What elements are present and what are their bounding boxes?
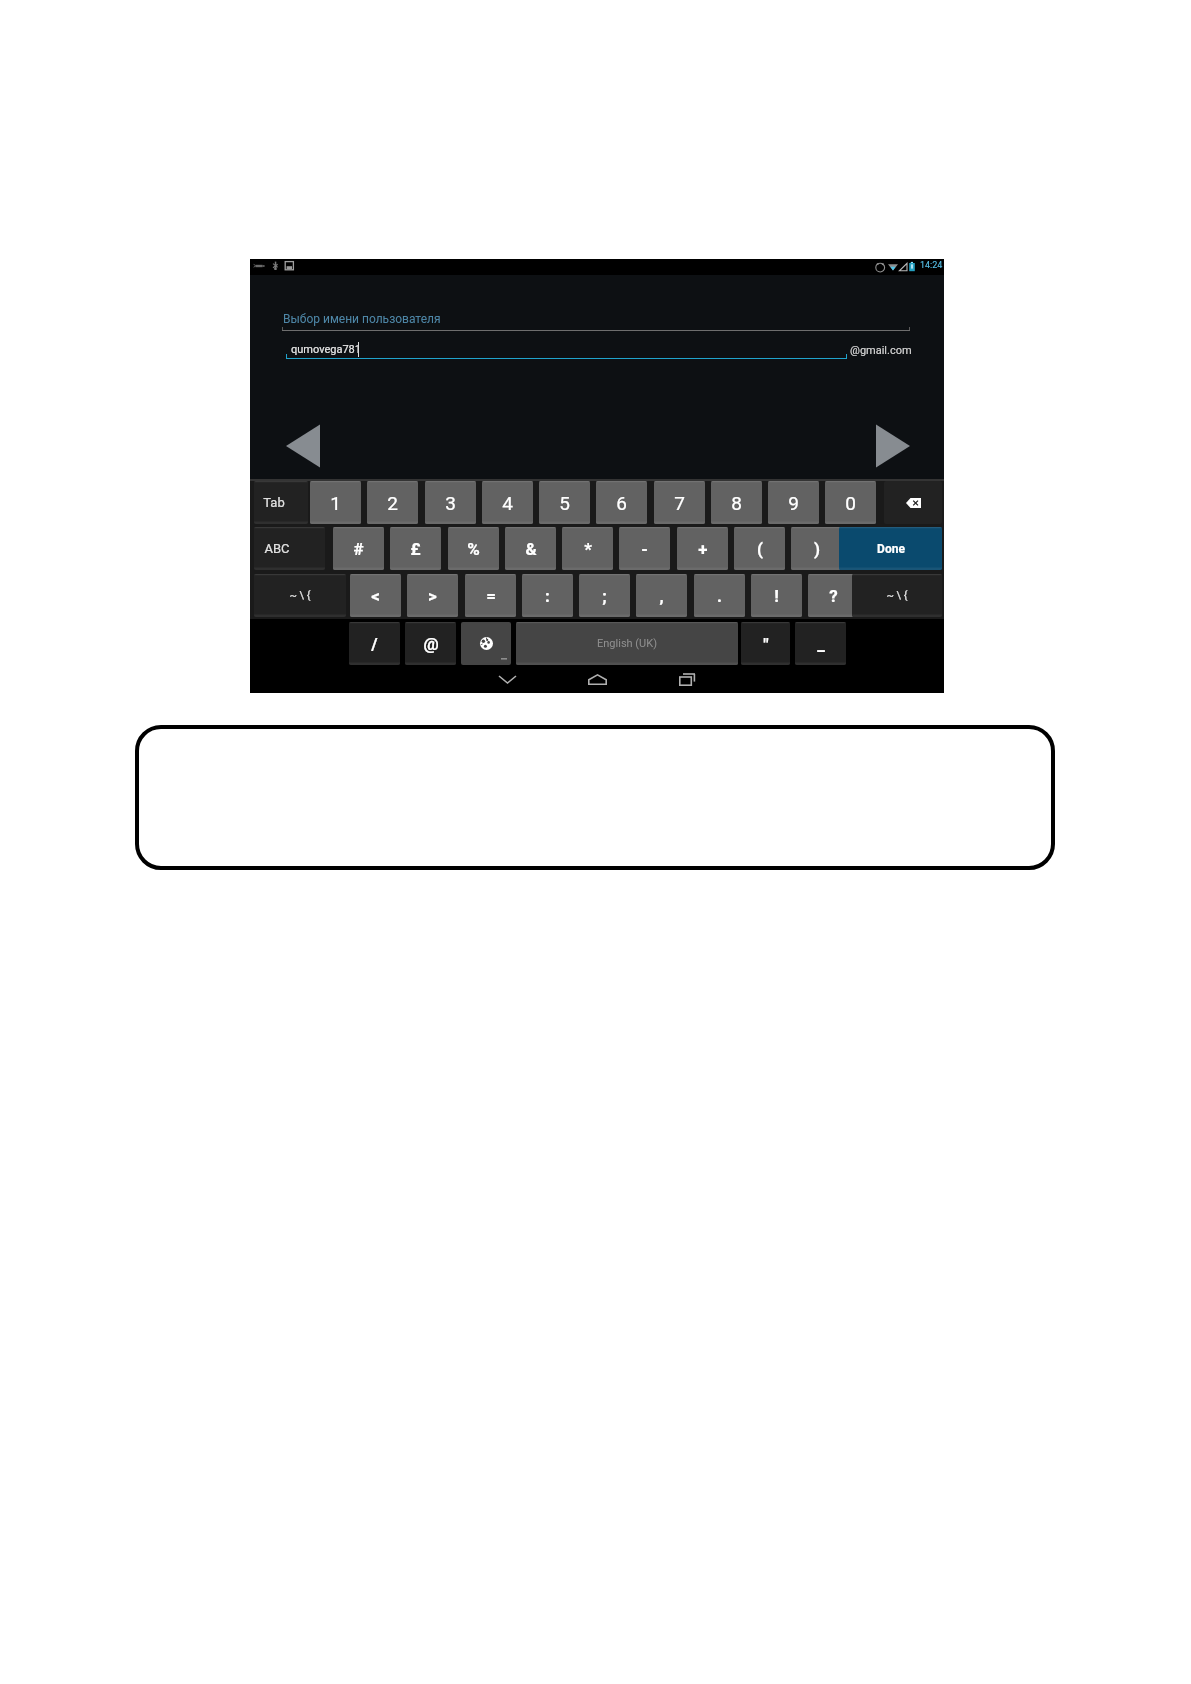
button[interactable]: 8 xyxy=(711,481,762,524)
button[interactable]: * xyxy=(562,527,613,570)
button[interactable]: 5 xyxy=(539,481,590,524)
button[interactable]: 3 xyxy=(425,481,476,524)
staticText: ! xyxy=(774,586,779,606)
staticText: 3 xyxy=(445,492,456,514)
staticText: Tab xyxy=(263,495,285,510)
staticText: & xyxy=(525,539,537,559)
staticText: _ xyxy=(817,634,825,654)
button[interactable]: Recent apps xyxy=(662,666,712,692)
button[interactable]: 2 xyxy=(367,481,418,524)
button[interactable]: & xyxy=(505,527,556,570)
button[interactable]: ( xyxy=(734,527,785,570)
button[interactable]: Tab xyxy=(254,481,308,524)
staticText: ABC xyxy=(264,541,290,556)
button[interactable]: ! xyxy=(751,574,802,617)
button[interactable]: 7 xyxy=(654,481,705,524)
staticText: 9 xyxy=(788,492,799,514)
button[interactable]: ~ \ { xyxy=(852,574,942,617)
button[interactable]: ? xyxy=(808,574,859,617)
button[interactable]: ) xyxy=(791,527,842,570)
button[interactable]: Next xyxy=(876,424,910,468)
button[interactable]: % xyxy=(448,527,499,570)
button[interactable]: - xyxy=(619,527,670,570)
staticText: English (UK) xyxy=(597,637,657,650)
button[interactable]: , xyxy=(636,574,687,617)
staticText: # xyxy=(353,539,364,559)
staticText: 2 xyxy=(387,492,398,514)
staticText: " xyxy=(763,634,769,654)
button[interactable]: Change keyboard language xyxy=(461,622,511,665)
button[interactable]: Hide keyboard xyxy=(482,666,532,692)
staticText: 14:24 xyxy=(920,260,943,271)
button[interactable]: _ xyxy=(795,622,846,665)
staticText: 8 xyxy=(731,492,742,514)
staticText: = xyxy=(486,586,496,606)
button[interactable]: ; xyxy=(579,574,630,617)
staticText: £ xyxy=(410,539,421,559)
button[interactable]: 9 xyxy=(768,481,819,524)
staticText: : xyxy=(545,586,550,606)
button[interactable]: : xyxy=(522,574,573,617)
staticText: - xyxy=(641,539,648,559)
button[interactable]: 1 xyxy=(310,481,361,524)
button[interactable]: Backspace xyxy=(884,481,942,524)
staticText: 1 xyxy=(330,492,341,514)
button[interactable]: 6 xyxy=(596,481,647,524)
button[interactable]: @ xyxy=(405,622,456,665)
staticText: ( xyxy=(757,539,763,559)
staticText: ~ \ { xyxy=(289,589,311,602)
staticText: 6 xyxy=(616,492,627,514)
button[interactable]: = xyxy=(465,574,516,617)
staticText: * xyxy=(584,539,592,559)
staticText: 0 xyxy=(845,492,856,514)
button[interactable]: 4 xyxy=(482,481,533,524)
button[interactable]: " xyxy=(741,622,790,665)
staticText: + xyxy=(698,539,708,559)
staticText: 7 xyxy=(674,492,685,514)
staticText: 5 xyxy=(559,492,570,514)
button[interactable]: Previous xyxy=(286,424,320,468)
staticText: @gmail.com xyxy=(850,344,912,357)
button[interactable]: ~ \ { xyxy=(254,574,346,617)
staticText: % xyxy=(467,539,480,559)
staticText: . xyxy=(717,586,722,606)
button[interactable]: £ xyxy=(390,527,441,570)
staticText: ? xyxy=(829,586,838,606)
staticText: @ xyxy=(423,634,439,654)
staticText: ~ \ { xyxy=(886,589,908,602)
button[interactable]: 0 xyxy=(825,481,876,524)
button[interactable]: ABC xyxy=(254,527,325,570)
button[interactable]: English (UK) xyxy=(516,622,738,665)
button[interactable]: > xyxy=(407,574,458,617)
staticText: qumovega781 xyxy=(291,343,361,356)
staticText: ; xyxy=(602,586,607,606)
staticText: Выбор имени пользователя xyxy=(283,312,441,326)
button[interactable]: # xyxy=(333,527,384,570)
staticText: , xyxy=(659,586,664,606)
staticText: > xyxy=(428,586,437,606)
staticText: Done xyxy=(877,542,905,556)
staticText: 4 xyxy=(502,492,513,514)
button[interactable]: < xyxy=(350,574,401,617)
button[interactable]: Done xyxy=(839,527,942,570)
staticText: / xyxy=(371,634,378,654)
button[interactable]: / xyxy=(349,622,400,665)
staticText: ) xyxy=(814,539,820,559)
button[interactable]: Home xyxy=(572,666,622,692)
button[interactable]: qumovega781 xyxy=(286,337,847,361)
staticText: < xyxy=(371,586,380,606)
button[interactable]: . xyxy=(694,574,745,617)
button[interactable]: + xyxy=(677,527,728,570)
